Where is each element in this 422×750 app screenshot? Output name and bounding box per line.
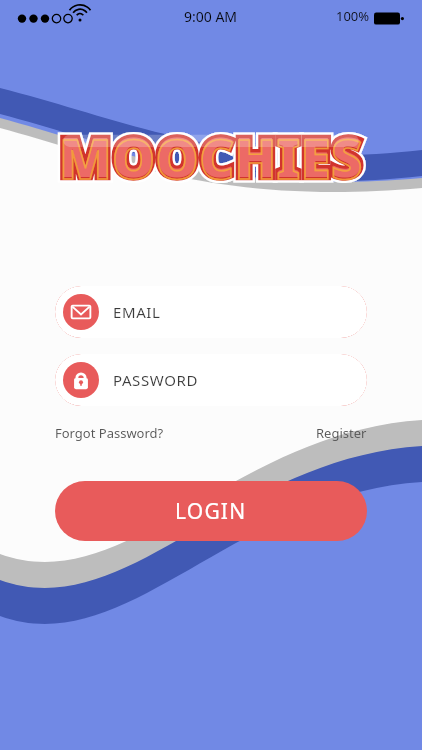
staticText: Register bbox=[316, 424, 367, 442]
staticText: 9:00 AM bbox=[184, 7, 238, 26]
staticText: EMAIL bbox=[113, 302, 161, 322]
button[interactable]: LOGIN bbox=[55, 481, 367, 541]
staticText: MOOCHIES bbox=[59, 119, 363, 193]
staticText: Forgot Password? bbox=[55, 424, 164, 442]
staticText: 100% bbox=[336, 7, 370, 25]
button[interactable]: EMAIL bbox=[55, 286, 367, 338]
staticText: PASSWORD bbox=[113, 370, 198, 390]
staticText: MOOCHIES bbox=[59, 121, 363, 195]
staticText: MOOCHIES bbox=[59, 119, 363, 193]
staticText: MOOCHIES bbox=[59, 119, 363, 193]
button[interactable]: Register bbox=[316, 424, 367, 442]
button[interactable]: PASSWORD bbox=[55, 354, 367, 406]
staticText: LOGIN bbox=[175, 497, 247, 526]
button[interactable]: Forgot Password? bbox=[55, 424, 164, 442]
staticText: MOOCHIES bbox=[61, 122, 365, 196]
